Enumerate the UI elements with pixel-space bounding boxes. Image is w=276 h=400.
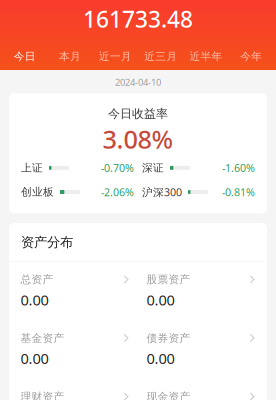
staticText: 理财资产 [20,390,64,400]
staticText: 沪深300 [142,185,182,199]
staticText: 近半年 [189,50,222,63]
staticText: 0.00 [146,349,174,368]
staticText: 近一月 [99,50,132,63]
button[interactable]: 债券资产 [146,321,255,379]
staticText: 今日 [14,50,36,63]
staticText: 本月 [59,50,81,63]
staticText: -1.60% [222,161,255,175]
staticText: 0.00 [20,349,48,368]
staticText: 基金资产 [20,332,64,345]
staticText: 深证 [142,161,164,174]
staticText: -0.70% [101,161,134,175]
button[interactable]: 理财资产 [20,379,129,400]
staticText: 债券资产 [146,332,190,345]
staticText: 今日收益率 [108,106,168,121]
staticText: 2024-04-10 [115,76,161,88]
button[interactable]: 今日 [2,47,47,66]
button[interactable]: 近半年 [183,47,229,66]
button[interactable]: 本月 [47,47,93,66]
staticText: 总资产 [20,273,53,286]
staticText: 3.08% [102,122,173,156]
button[interactable]: 总资产 [20,262,129,321]
staticText: 现金资产 [146,390,190,400]
button[interactable]: 现金资产 [146,379,255,400]
button[interactable]: 近一月 [93,47,138,66]
staticText: 股票资产 [146,273,190,286]
staticText: 161733.48 [83,4,193,34]
staticText: 上证 [21,161,43,174]
staticText: 创业板 [21,185,54,199]
staticText: 今年 [240,50,262,63]
staticText: -0.81% [222,185,255,199]
staticText: 0.00 [20,290,48,310]
button[interactable]: 今年 [229,47,274,66]
button[interactable]: 基金资产 [20,321,129,379]
button[interactable]: 近三月 [138,47,183,66]
staticText: 0.00 [146,290,174,310]
staticText: 资产分布 [21,234,73,250]
button[interactable]: 股票资产 [146,262,255,321]
staticText: 近三月 [144,50,177,63]
staticText: -2.06% [101,185,134,199]
